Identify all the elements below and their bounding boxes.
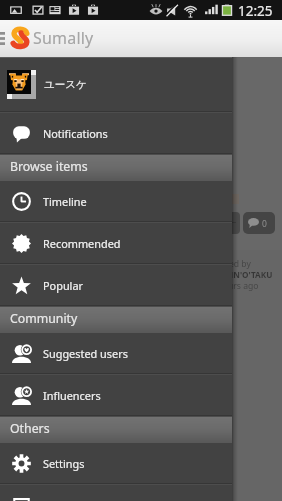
button[interactable]: Recommended xyxy=(0,223,232,263)
button[interactable]: Influencers xyxy=(0,375,232,415)
staticText: Timeline xyxy=(43,194,87,209)
staticText: Community xyxy=(10,310,78,327)
button[interactable]: About xyxy=(0,485,232,501)
staticText: Popular xyxy=(43,278,84,293)
button[interactable]: Popular xyxy=(0,265,232,305)
button[interactable]: Timeline xyxy=(0,181,232,221)
staticText: 0 xyxy=(262,218,267,230)
staticText: Sumally xyxy=(33,27,94,49)
staticText: Settings xyxy=(43,456,85,471)
staticText: HN'O'TAKU xyxy=(227,269,273,280)
staticText: Suggested users xyxy=(43,346,128,361)
button[interactable]: Settings xyxy=(0,443,232,483)
staticText: Influencers xyxy=(43,388,101,403)
staticText: Notifications xyxy=(43,126,108,141)
button[interactable]: Notifications xyxy=(0,113,232,153)
button[interactable]: Comments xyxy=(243,212,275,234)
button[interactable]: Like xyxy=(228,212,240,234)
button[interactable]: ユースケ xyxy=(0,58,232,111)
staticText: ed by xyxy=(229,258,251,270)
button[interactable]: Suggested users xyxy=(0,333,232,373)
button[interactable]: Open navigation drawer xyxy=(0,20,9,57)
staticText: Others xyxy=(10,420,50,437)
staticText: Recommended xyxy=(43,236,121,251)
staticText: Browse items xyxy=(10,158,88,175)
staticText: ユースケ xyxy=(44,78,87,91)
staticText: 12:25 xyxy=(238,2,273,20)
staticText: urs ago xyxy=(228,280,259,292)
